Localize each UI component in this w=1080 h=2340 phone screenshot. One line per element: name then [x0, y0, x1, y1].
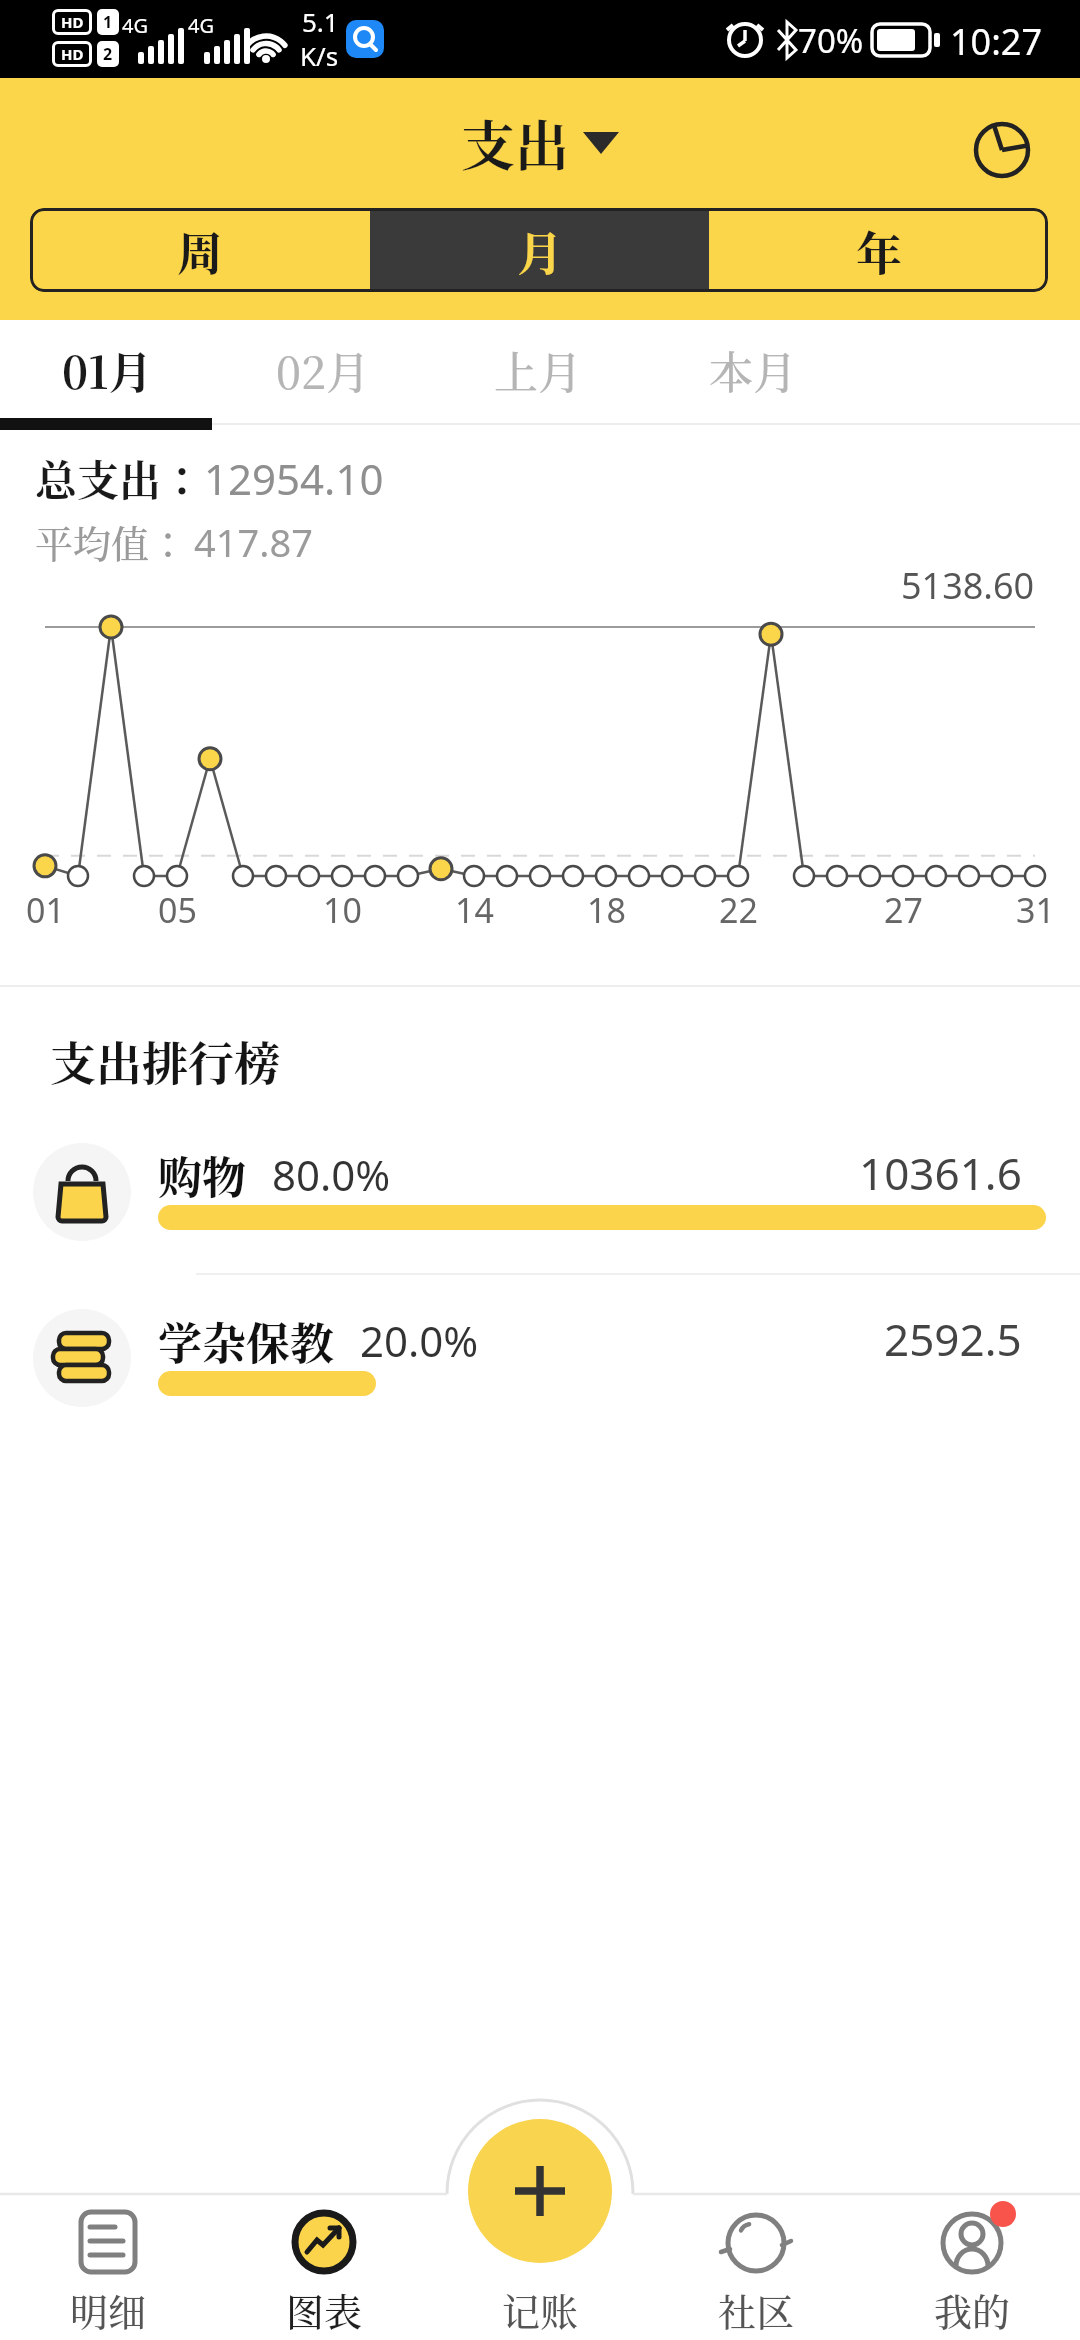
staticText: 支出排行榜 [50, 1027, 280, 1093]
staticText: 我的 [934, 2282, 1011, 2337]
staticText: 总支出： [35, 448, 204, 508]
staticText: 明细 [70, 2282, 147, 2337]
staticText: 80.0% [272, 1146, 391, 1203]
button[interactable]: 明细 [0, 2194, 216, 2340]
staticText: 2592.5 [884, 1309, 1022, 1369]
staticText: 12954.10 [204, 450, 384, 507]
staticText: 5138.60 [901, 561, 1035, 601]
staticText: 70% [798, 18, 864, 63]
staticText: 14 [455, 887, 494, 933]
staticText: 20.0% [360, 1312, 479, 1369]
button[interactable]: 上月 [430, 320, 645, 418]
staticText: 年 [856, 217, 902, 283]
button[interactable]: 支出 [461, 104, 619, 182]
staticText: 5.1 [302, 4, 339, 39]
button[interactable] [468, 2119, 612, 2263]
staticText: 18 [587, 887, 626, 933]
staticText: 02月 [276, 338, 370, 401]
button[interactable]: 图表 [216, 2194, 432, 2340]
staticText: 22 [719, 887, 758, 933]
staticText: 31 [1016, 887, 1055, 933]
staticText: 10 [323, 887, 362, 933]
staticText: 4G [188, 12, 214, 39]
staticText: 学杂保教 [158, 1309, 334, 1372]
staticText: 01月 [62, 338, 153, 401]
button[interactable]: 我的 [864, 2194, 1080, 2340]
staticText: 10:27 [950, 17, 1043, 66]
staticText: 2 [103, 43, 113, 65]
staticText: 月 [517, 217, 563, 283]
staticText: 27 [884, 887, 923, 933]
button[interactable]: 02月 [215, 320, 430, 418]
button[interactable]: 年 [709, 208, 1048, 292]
button[interactable]: 01月 [0, 320, 215, 418]
staticText: 社区 [718, 2282, 795, 2337]
staticText: 05 [158, 887, 197, 933]
button[interactable]: 本月 [645, 320, 860, 418]
staticText: 购物 [158, 1143, 246, 1206]
staticText: 支出 [461, 104, 569, 182]
staticText: 记账 [502, 2282, 579, 2337]
staticText: 平均值： [35, 514, 188, 569]
button[interactable]: 购物 [0, 1129, 1080, 1255]
staticText: 本月 [709, 338, 797, 401]
button[interactable]: 记账 [432, 2194, 648, 2340]
staticText: 上月 [494, 338, 582, 401]
staticText: HD [61, 12, 84, 32]
button[interactable] [972, 118, 1032, 178]
button[interactable]: 周 [30, 208, 370, 292]
staticText: 周 [177, 217, 223, 283]
staticText: 图表 [286, 2282, 363, 2337]
staticText: 1 [103, 11, 113, 33]
staticText: 10361.6 [859, 1143, 1022, 1203]
staticText: 417.87 [194, 516, 313, 568]
button[interactable]: 月 [370, 208, 709, 292]
button[interactable]: 学杂保教 [0, 1295, 1080, 1421]
button[interactable]: 社区 [648, 2194, 864, 2340]
staticText: HD [61, 44, 84, 64]
staticText: 01 [26, 887, 65, 933]
staticText: K/s [300, 38, 339, 73]
staticText: 4G [122, 12, 148, 39]
